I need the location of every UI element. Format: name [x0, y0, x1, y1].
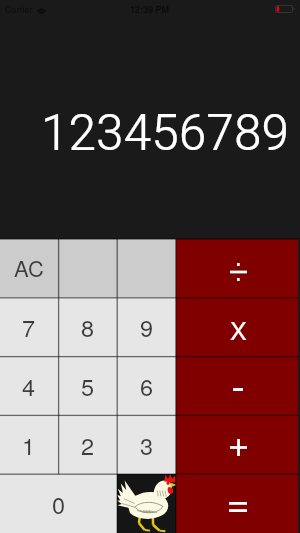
button[interactable]: Divide [176, 239, 300, 297]
staticText: 2 [81, 428, 95, 462]
staticText: 4 [22, 369, 36, 403]
button[interactable]: 4 [0, 356, 58, 415]
button[interactable]: 8 [58, 297, 117, 356]
staticText: 8 [81, 310, 95, 344]
staticText: 6 [140, 369, 154, 403]
button[interactable]: Subtract [176, 356, 300, 415]
button[interactable] [58, 239, 117, 297]
staticText: 1 [22, 428, 36, 462]
button[interactable]: Multiply [176, 297, 300, 356]
button[interactable]: 5 [58, 356, 117, 415]
button[interactable]: 3 [117, 415, 176, 474]
staticText: Carrier [5, 3, 33, 16]
button[interactable]: Chicken [117, 474, 176, 533]
button[interactable]: 7 [0, 297, 58, 356]
button[interactable]: 0 [0, 474, 117, 533]
button[interactable]: Add [176, 415, 300, 474]
staticText: 123456789 [41, 98, 289, 171]
button[interactable]: 1 [0, 415, 58, 474]
staticText: X [230, 311, 247, 347]
button[interactable]: Equals [176, 474, 300, 533]
button[interactable] [117, 239, 176, 297]
staticText: 5 [81, 369, 95, 403]
button[interactable]: AC [0, 239, 58, 297]
staticText: 0 [52, 487, 66, 521]
staticText: 12:39 PM [130, 3, 170, 16]
staticText: 7 [22, 310, 36, 344]
staticText: 3 [140, 428, 154, 462]
button[interactable]: 2 [58, 415, 117, 474]
staticText: AC [14, 252, 44, 284]
staticText: 9 [140, 310, 154, 344]
button[interactable]: 6 [117, 356, 176, 415]
button[interactable]: 9 [117, 297, 176, 356]
